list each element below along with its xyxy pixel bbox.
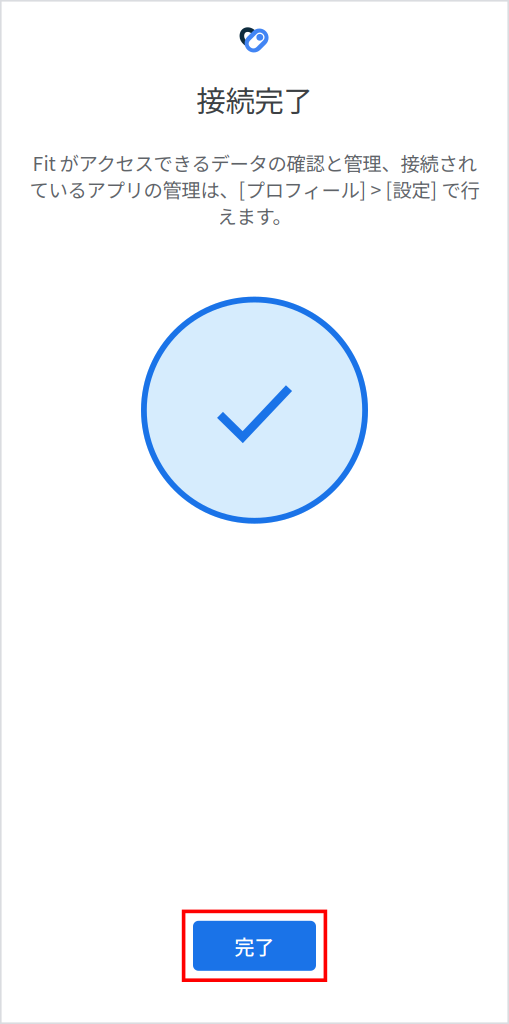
staticText: Fit がアクセスできるデータの確認と管理、接続され	[32, 148, 476, 176]
staticText: 接続完了	[196, 78, 312, 120]
staticText: えます。	[217, 202, 291, 230]
button[interactable]: 完了	[182, 910, 327, 982]
staticText: 完了	[234, 931, 274, 960]
staticText: ているアプリの管理は、[プロフィール] > [設定] で行	[29, 175, 479, 203]
